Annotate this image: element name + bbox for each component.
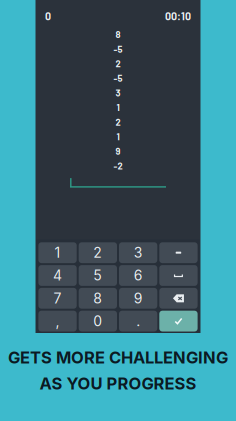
staticText: 2: [115, 58, 120, 69]
button[interactable]: Space: [159, 265, 198, 286]
staticText: 3: [134, 244, 143, 261]
staticText: 1: [55, 244, 61, 261]
button[interactable]: 0: [79, 311, 117, 331]
staticText: 0: [93, 313, 102, 329]
staticText: -2: [113, 160, 122, 171]
button[interactable]: 6: [119, 265, 157, 286]
staticText: .: [136, 313, 140, 329]
staticText: 3: [115, 87, 120, 98]
staticText: 7: [54, 290, 62, 307]
staticText: -5: [113, 43, 122, 54]
staticText: AS YOU PROGRESS: [39, 373, 196, 393]
button[interactable]: Submit answer: [159, 311, 198, 331]
staticText: 1: [116, 131, 119, 142]
button[interactable]: Minus: [159, 242, 198, 263]
staticText: 5: [93, 267, 102, 284]
staticText: 9: [134, 290, 143, 307]
staticText: 2: [93, 244, 102, 261]
staticText: 6: [134, 267, 143, 284]
staticText: 8: [115, 29, 120, 40]
button[interactable]: 9: [119, 288, 157, 309]
staticText: ,: [56, 313, 60, 329]
staticText: 2: [115, 116, 120, 127]
button[interactable]: 8: [79, 288, 117, 309]
staticText: -5: [113, 72, 122, 84]
button[interactable]: 1: [38, 242, 77, 263]
button[interactable]: 2: [79, 242, 117, 263]
button[interactable]: 5: [79, 265, 117, 286]
button[interactable]: 3: [119, 242, 157, 263]
staticText: GETS MORE CHALLENGING: [8, 347, 228, 367]
staticText: 9: [115, 145, 120, 157]
button[interactable]: .: [119, 311, 157, 331]
staticText: 1: [116, 102, 119, 113]
button[interactable]: 4: [38, 265, 77, 286]
staticText: 0: [45, 10, 51, 22]
staticText: 00:10: [165, 10, 191, 22]
staticText: 8: [93, 290, 102, 307]
button[interactable]: 7: [38, 288, 77, 309]
staticText: 4: [53, 267, 62, 284]
button[interactable]: Delete: [159, 288, 198, 309]
button[interactable]: ,: [38, 311, 77, 331]
